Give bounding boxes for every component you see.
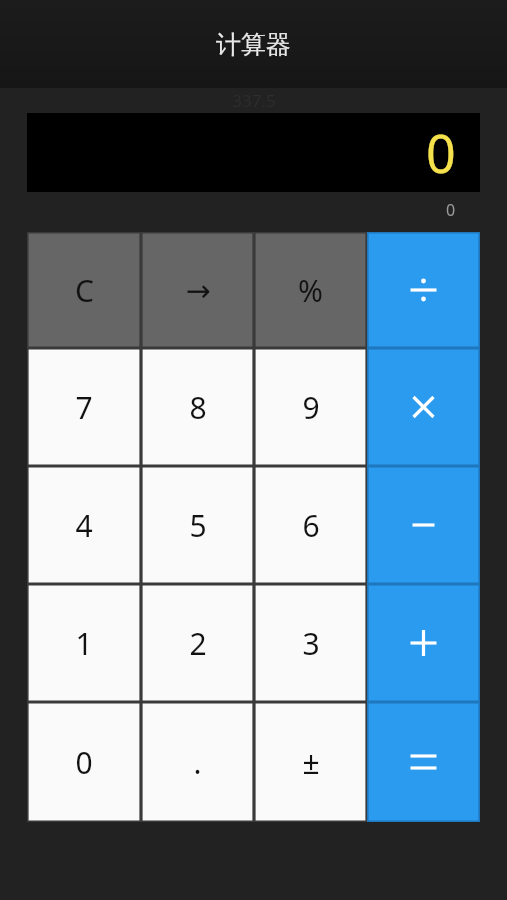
staticText: C [75, 270, 94, 311]
staticText: 8 [189, 387, 207, 428]
staticText: 9 [302, 387, 320, 428]
button[interactable]: 7 [27, 348, 141, 466]
staticText: 3 [302, 623, 320, 664]
button[interactable]: Minus [367, 466, 480, 584]
staticText: . [193, 742, 202, 783]
staticText: 计算器 [216, 29, 291, 60]
button[interactable]: . [141, 702, 254, 822]
staticText: 6 [302, 505, 320, 546]
staticText: 1 [75, 623, 93, 664]
button[interactable]: 8 [141, 348, 254, 466]
button[interactable]: 5 [141, 466, 254, 584]
button[interactable]: 6 [254, 466, 367, 584]
staticText: 7 [75, 387, 93, 428]
button[interactable]: Plus minus [254, 702, 367, 822]
staticText: 4 [75, 505, 93, 546]
button[interactable]: 1 [27, 584, 141, 702]
staticText: ± [302, 742, 320, 783]
button[interactable]: 9 [254, 348, 367, 466]
button[interactable]: Multiply [367, 348, 480, 466]
button[interactable]: Divide [367, 232, 480, 348]
button[interactable]: 4 [27, 466, 141, 584]
staticText: % [298, 270, 323, 311]
button[interactable]: % [254, 232, 367, 348]
staticText: → [185, 273, 211, 308]
staticText: 0 [426, 117, 456, 188]
button[interactable]: Equals [367, 702, 480, 822]
button[interactable]: 3 [254, 584, 367, 702]
button[interactable]: 2 [141, 584, 254, 702]
staticText: 2 [189, 623, 207, 664]
staticText: 0 [75, 742, 93, 783]
button[interactable]: Plus [367, 584, 480, 702]
button[interactable]: C [27, 232, 141, 348]
staticText: 0 [446, 199, 456, 221]
button[interactable]: 0 [27, 702, 141, 822]
staticText: 5 [189, 505, 207, 546]
button[interactable]: Backspace [141, 232, 254, 348]
staticText: 337.5 [232, 89, 276, 112]
